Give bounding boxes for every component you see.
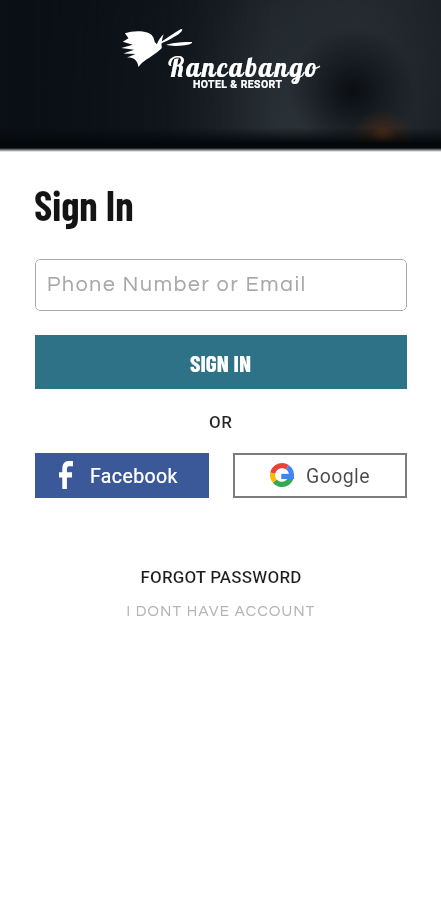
staticText: I DONT HAVE ACCOUNT (126, 604, 316, 619)
staticText: Phone Number or Email (47, 274, 307, 296)
staticText: Rancabango (167, 50, 319, 83)
staticText: SIGN IN (190, 348, 252, 376)
button[interactable]: I DONT HAVE ACCOUNT (0, 599, 441, 623)
button[interactable]: SIGN IN (35, 335, 407, 389)
button[interactable]: Google (233, 453, 407, 498)
staticText: Facebook (90, 465, 178, 488)
button[interactable]: Facebook (35, 453, 209, 498)
staticText: Sign In (34, 180, 134, 229)
staticText: HOTEL & RESORT (193, 78, 283, 90)
button[interactable]: Phone Number or Email (35, 259, 407, 311)
staticText: OR (209, 412, 233, 432)
button[interactable]: FORGOT PASSWORD (0, 564, 441, 590)
staticText: FORGOT PASSWORD (140, 567, 302, 587)
staticText: Google (306, 465, 370, 488)
